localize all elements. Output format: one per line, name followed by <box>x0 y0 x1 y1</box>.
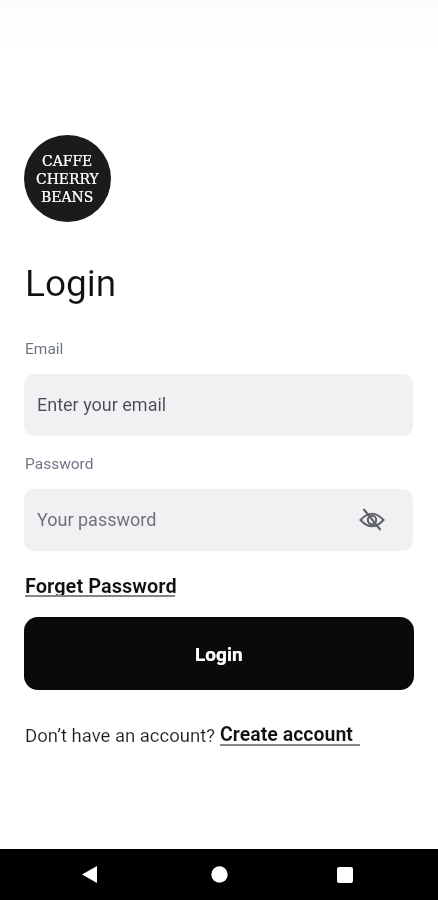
staticText: Login <box>25 262 117 305</box>
button[interactable]: Your password <box>24 489 413 551</box>
button[interactable]: Forget Password <box>25 574 177 597</box>
staticText: Create account <box>220 723 353 746</box>
staticText: Login <box>195 643 243 665</box>
staticText: Enter your email <box>37 394 167 415</box>
staticText: Password <box>25 455 94 473</box>
staticText: BEANS <box>41 188 94 206</box>
button[interactable] <box>337 867 353 883</box>
button[interactable] <box>211 866 228 883</box>
button[interactable]: Create account <box>220 723 360 746</box>
staticText: Your password <box>37 509 157 530</box>
staticText: Don’t have an account? <box>25 725 215 747</box>
staticText: CAFFE <box>42 152 93 170</box>
button[interactable]: Login <box>24 617 414 690</box>
button[interactable]: Enter your email <box>24 374 413 436</box>
staticText: Email <box>25 340 64 358</box>
staticText: Forget Password <box>25 574 177 597</box>
button[interactable] <box>82 866 97 883</box>
staticText: CHERRY <box>36 170 99 188</box>
